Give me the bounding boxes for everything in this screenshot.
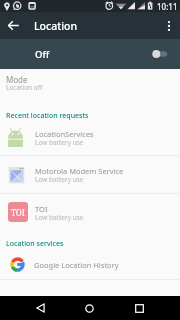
staticText: TOI [11, 207, 25, 218]
button[interactable]: Navigate up [3, 15, 24, 36]
staticText: Location services [6, 239, 64, 249]
button[interactable]: Back [29, 296, 51, 320]
button[interactable]: TOI [0, 194, 180, 230]
staticText: Off [35, 48, 50, 61]
staticText: 10:11 [157, 1, 178, 12]
button[interactable]: Motorola Modem Service [0, 156, 180, 192]
staticText: Location off [6, 83, 43, 92]
button[interactable]: More options [158, 15, 180, 37]
staticText: LocationServices [35, 129, 94, 139]
button[interactable]: Mode [0, 69, 180, 95]
button[interactable]: Recent apps [128, 296, 150, 320]
button[interactable]: Off [0, 39, 180, 69]
staticText: Low battery use [35, 138, 84, 147]
button[interactable]: Home [78, 296, 100, 320]
staticText: Low battery use [35, 213, 84, 222]
staticText: Location [34, 19, 78, 33]
staticText: Recent location requests [6, 111, 89, 121]
staticText: Mode [6, 74, 28, 85]
staticText: Motorola Modem Service [35, 166, 124, 176]
staticText: TOI [35, 204, 48, 214]
staticText: Google Location History [34, 260, 119, 270]
button[interactable]: LocationServices [0, 119, 180, 155]
button[interactable]: Google Location History [0, 250, 180, 279]
staticText: Low battery use [35, 175, 84, 184]
